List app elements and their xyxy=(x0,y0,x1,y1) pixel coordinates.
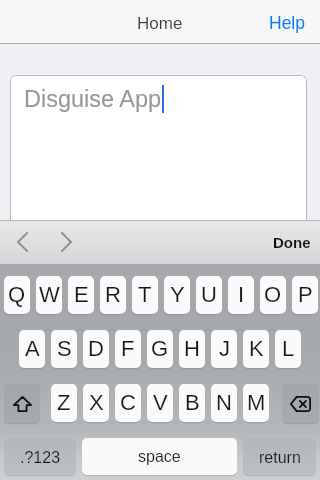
button[interactable]: Q xyxy=(4,276,30,314)
staticText: Q xyxy=(8,282,26,307)
staticText: F xyxy=(121,336,135,361)
staticText: space xyxy=(138,448,181,466)
staticText: I xyxy=(238,282,245,307)
staticText: U xyxy=(201,282,217,307)
staticText: G xyxy=(151,336,169,361)
button[interactable]: S xyxy=(51,330,77,368)
button[interactable]: N xyxy=(211,384,237,422)
staticText: D xyxy=(88,336,104,361)
staticText: A xyxy=(25,336,40,361)
button[interactable]: D xyxy=(83,330,109,368)
staticText: X xyxy=(89,390,104,415)
button[interactable]: Next field xyxy=(44,220,88,264)
button[interactable]: return xyxy=(243,438,316,475)
button[interactable]: H xyxy=(179,330,205,368)
button[interactable]: J xyxy=(211,330,237,368)
staticText: V xyxy=(153,390,168,415)
staticText: Done xyxy=(273,234,311,251)
button[interactable]: Delete xyxy=(282,384,319,423)
button[interactable]: .?123 xyxy=(4,438,76,475)
button[interactable]: T xyxy=(132,276,158,314)
staticText: B xyxy=(185,390,200,415)
button[interactable]: M xyxy=(243,384,269,422)
button[interactable]: Help xyxy=(0,0,320,44)
button[interactable]: V xyxy=(147,384,173,422)
button[interactable]: C xyxy=(115,384,141,422)
button[interactable]: O xyxy=(260,276,286,314)
staticText: M xyxy=(247,390,266,415)
button[interactable]: Y xyxy=(164,276,190,314)
staticText: Disguise App xyxy=(24,86,162,112)
staticText: return xyxy=(259,449,301,467)
button[interactable]: L xyxy=(275,330,301,368)
button[interactable]: Done xyxy=(0,220,320,264)
staticText: S xyxy=(57,336,72,361)
button[interactable]: B xyxy=(179,384,205,422)
staticText: Z xyxy=(57,390,71,415)
staticText: H xyxy=(184,336,200,361)
staticText: R xyxy=(105,282,121,307)
button[interactable]: W xyxy=(36,276,62,314)
button[interactable]: R xyxy=(100,276,126,314)
button[interactable]: space xyxy=(82,438,237,475)
staticText: Home xyxy=(137,14,183,33)
button[interactable]: Disguise App xyxy=(10,75,307,225)
button[interactable]: A xyxy=(19,330,45,368)
button[interactable]: F xyxy=(115,330,141,368)
staticText: Y xyxy=(170,282,185,307)
button[interactable]: E xyxy=(68,276,94,314)
staticText: E xyxy=(74,282,89,307)
staticText: L xyxy=(282,336,295,361)
button[interactable]: Z xyxy=(51,384,77,422)
button[interactable]: P xyxy=(292,276,318,314)
staticText: J xyxy=(219,336,230,361)
staticText: W xyxy=(39,282,60,307)
button[interactable]: X xyxy=(83,384,109,422)
staticText: Help xyxy=(269,13,305,33)
button[interactable]: I xyxy=(228,276,254,314)
staticText: O xyxy=(264,282,282,307)
staticText: K xyxy=(249,336,264,361)
staticText: N xyxy=(216,390,232,415)
button[interactable]: G xyxy=(147,330,173,368)
button[interactable]: Previous field xyxy=(0,220,44,264)
staticText: .?123 xyxy=(20,449,61,467)
staticText: P xyxy=(298,282,313,307)
button[interactable]: U xyxy=(196,276,222,314)
staticText: C xyxy=(120,390,136,415)
button[interactable]: Shift xyxy=(4,384,40,423)
button[interactable]: K xyxy=(243,330,269,368)
staticText: T xyxy=(138,282,152,307)
